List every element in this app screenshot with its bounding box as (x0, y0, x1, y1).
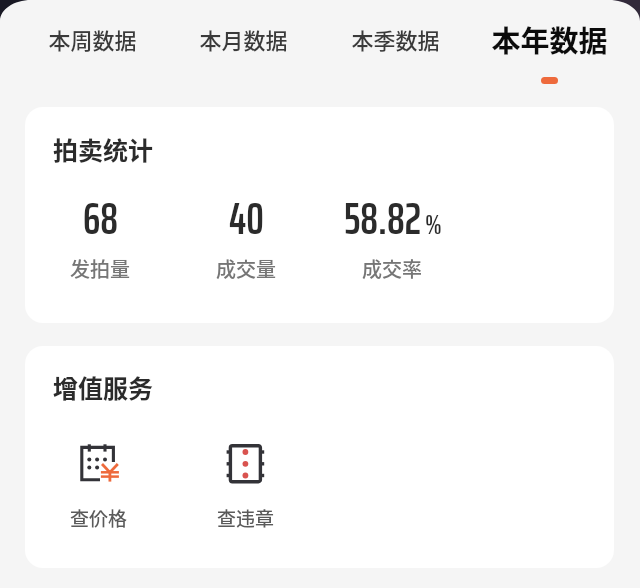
staticText: 查违章 (217, 504, 275, 532)
staticText: 本季数据 (351, 23, 440, 55)
button[interactable]: 本周数据 (0, 0, 160, 55)
staticText: 成交率 (362, 254, 422, 283)
staticText: 本月数据 (199, 23, 288, 55)
button[interactable]: 本月数据 (160, 0, 320, 55)
button[interactable]: 查违章 (156, 444, 336, 532)
other: 查价格 (79, 444, 119, 484)
staticText: 68 (83, 184, 118, 253)
button[interactable]: 查价格 (9, 444, 189, 532)
button[interactable]: 本季数据 (320, 0, 480, 55)
staticText: 本年数据 (491, 18, 608, 60)
staticText: 查价格 (70, 504, 128, 532)
staticText: 成交量 (216, 254, 276, 283)
button[interactable]: 本年数据 (480, 0, 640, 84)
staticText: 40 (229, 184, 264, 253)
staticText: 拍卖统计 (53, 131, 154, 167)
staticText: 58.82 (344, 184, 422, 253)
staticText: % (425, 203, 442, 245)
other: 查违章 (226, 444, 266, 484)
staticText: 发拍量 (70, 254, 130, 283)
staticText: 增值服务 (53, 369, 154, 405)
staticText: 本周数据 (48, 23, 137, 55)
